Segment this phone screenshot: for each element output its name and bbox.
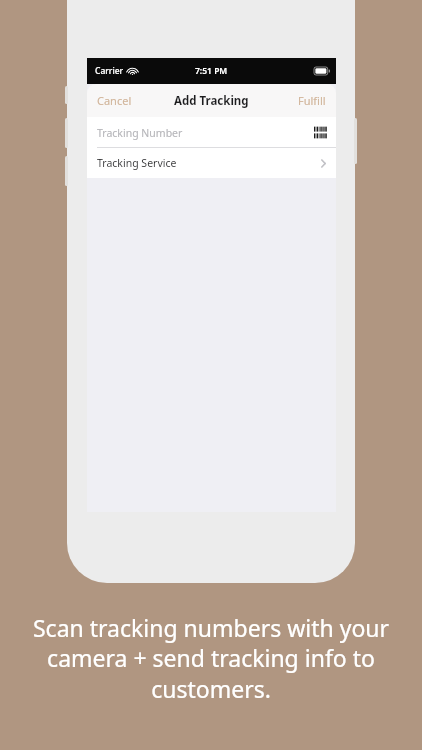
button[interactable]: Cancel: [87, 86, 142, 115]
staticText: 7:51 PM: [195, 65, 228, 77]
staticText: Cancel: [97, 93, 132, 108]
button[interactable]: Tracking Service: [87, 148, 336, 178]
staticText: Tracking Service: [97, 156, 177, 170]
staticText: Fulfill: [298, 93, 326, 108]
staticText: Tracking Number: [97, 126, 183, 140]
button[interactable]: Fulfill: [288, 86, 336, 115]
staticText: Carrier: [95, 65, 124, 77]
staticText: Scan tracking numbers with your camera +…: [16, 612, 406, 705]
button[interactable]: Scan barcode: [314, 126, 327, 139]
button[interactable]: Tracking Number: [87, 117, 336, 148]
staticText: Add Tracking: [174, 93, 249, 109]
